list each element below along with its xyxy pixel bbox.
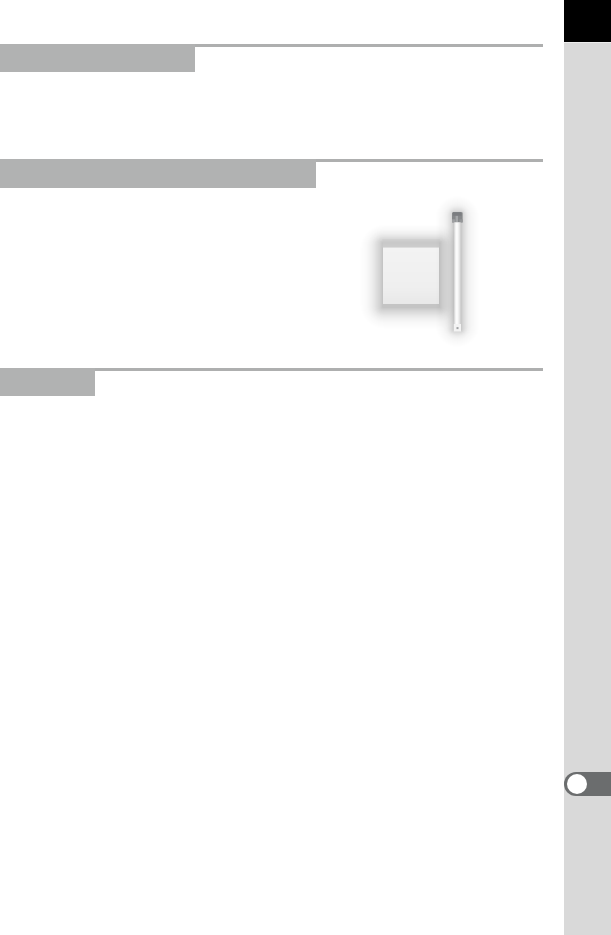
- button[interactable]: Toggle panel: [564, 772, 611, 796]
- button[interactable]: Product photo: [360, 196, 510, 361]
